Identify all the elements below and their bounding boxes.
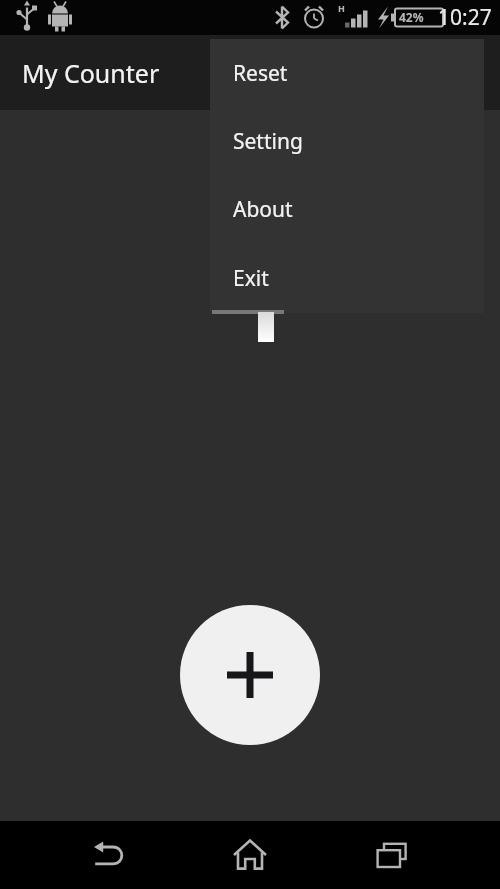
button[interactable]: Increment counter	[180, 605, 320, 745]
staticText: About	[233, 195, 293, 224]
staticText: Exit	[233, 264, 269, 293]
staticText: My Counter	[22, 56, 160, 90]
staticText: 42%	[399, 9, 424, 25]
staticText: Reset	[233, 59, 288, 88]
button[interactable]: Setting	[210, 107, 484, 175]
button[interactable]: Recent apps	[358, 821, 426, 889]
button[interactable]: Reset	[210, 39, 484, 107]
button[interactable]: Back	[74, 821, 142, 889]
staticText: Setting	[233, 127, 303, 156]
button[interactable]: Home	[216, 821, 284, 889]
button[interactable]: About	[210, 175, 484, 244]
button[interactable]: Exit	[210, 244, 484, 313]
staticText: H	[338, 2, 345, 14]
staticText: 10:27	[438, 3, 492, 32]
